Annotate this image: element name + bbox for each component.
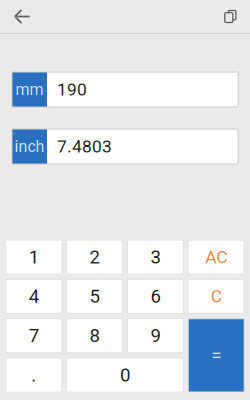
button[interactable]: 9 (127, 319, 183, 353)
button[interactable]: 5 (67, 279, 123, 313)
staticText: 190 (57, 79, 87, 100)
staticText: 4 (29, 285, 39, 307)
staticText: 9 (150, 325, 160, 347)
staticText: 8 (90, 325, 100, 347)
button[interactable]: . (6, 358, 62, 392)
staticText: inch (14, 137, 44, 156)
button[interactable]: 3 (127, 240, 183, 274)
button[interactable]: Back (0, 0, 40, 33)
staticText: mm (15, 80, 43, 99)
button[interactable]: 0 (67, 358, 183, 392)
button[interactable]: 4 (6, 279, 62, 313)
button[interactable]: 7 (6, 319, 62, 353)
staticText: 3 (150, 246, 160, 268)
staticText: 5 (90, 285, 100, 307)
button[interactable]: 2 (67, 240, 123, 274)
staticText: AC (205, 247, 227, 267)
staticText: 2 (90, 246, 100, 268)
staticText: . (31, 364, 36, 386)
staticText: 7 (29, 325, 39, 347)
button[interactable]: AC (188, 240, 244, 274)
staticText: 0 (120, 364, 130, 386)
button[interactable]: = (188, 319, 244, 392)
staticText: 1 (29, 246, 39, 268)
button[interactable]: C (188, 279, 244, 313)
button[interactable]: 6 (127, 279, 183, 313)
staticText: = (211, 344, 221, 366)
staticText: 7.4803 (57, 136, 112, 157)
staticText: 6 (150, 285, 160, 307)
button[interactable]: Copy (216, 0, 250, 33)
button[interactable]: 8 (67, 319, 123, 353)
button[interactable]: 1 (6, 240, 62, 274)
staticText: C (211, 286, 222, 306)
